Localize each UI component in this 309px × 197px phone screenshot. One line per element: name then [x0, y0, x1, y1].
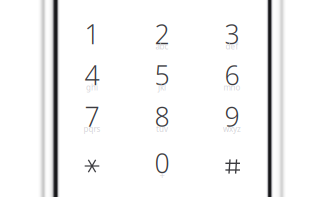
button[interactable]: Pound	[198, 146, 268, 187]
staticText: mno	[223, 82, 240, 93]
button[interactable]: 5	[127, 58, 197, 99]
staticText: ghi	[86, 82, 98, 93]
staticText: 2	[154, 16, 169, 52]
staticText: +	[159, 169, 164, 182]
button[interactable]: 9	[197, 99, 267, 140]
staticText: 3	[224, 16, 239, 52]
staticText: 8	[154, 99, 169, 134]
staticText: 6	[224, 57, 239, 93]
button[interactable]: 1	[57, 17, 127, 58]
button[interactable]: 0	[127, 146, 197, 187]
button[interactable]: 6	[197, 58, 267, 99]
staticText: 4	[84, 57, 99, 93]
staticText: 1	[84, 16, 99, 52]
button[interactable]: 4	[57, 58, 127, 99]
staticText: 5	[154, 57, 169, 93]
button[interactable]: 7	[57, 99, 127, 140]
button[interactable]: Star	[57, 145, 127, 186]
staticText: def	[225, 41, 238, 52]
button[interactable]: 8	[127, 99, 197, 140]
staticText: tuv	[156, 124, 168, 134]
staticText: 0	[154, 145, 169, 181]
staticText: 7	[84, 99, 99, 134]
staticText: jkl	[158, 82, 166, 93]
staticText: wxyz	[223, 124, 241, 134]
staticText: pqrs	[83, 124, 100, 134]
staticText: 9	[224, 99, 239, 134]
button[interactable]: 3	[197, 17, 267, 58]
staticText: abc	[155, 41, 168, 52]
button[interactable]: 2	[127, 17, 197, 58]
